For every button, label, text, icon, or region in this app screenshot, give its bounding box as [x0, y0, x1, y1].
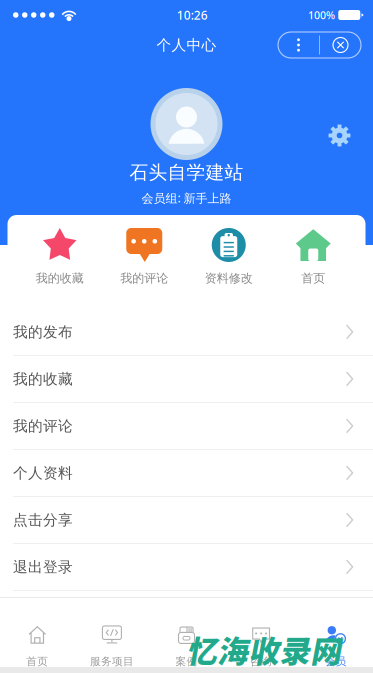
- button[interactable]: 服务项目: [75, 595, 149, 669]
- button[interactable]: 首页: [0, 595, 75, 669]
- staticText: 忆海收录网: [188, 633, 343, 669]
- button[interactable]: Close: [320, 32, 361, 58]
- staticText: 咨询: [250, 655, 272, 668]
- button[interactable]: 我的发布: [0, 309, 373, 356]
- staticText: 我的收藏: [13, 370, 73, 388]
- staticText: 案例: [175, 655, 197, 668]
- button[interactable]: 退出登录: [0, 544, 373, 591]
- staticText: 石头自学建站: [129, 161, 243, 184]
- staticText: 会员: [325, 655, 347, 668]
- staticText: 个人资料: [13, 464, 73, 482]
- staticText: 个人中心: [156, 36, 216, 54]
- button[interactable]: 我的评论: [102, 228, 186, 286]
- staticText: 我的收藏: [36, 271, 84, 286]
- staticText: 点击分享: [13, 511, 73, 529]
- button[interactable]: 我的评论: [0, 403, 373, 450]
- button[interactable]: More: [278, 32, 319, 58]
- staticText: 首页: [301, 271, 325, 286]
- staticText: 会员组: 新手上路: [141, 190, 231, 206]
- button[interactable]: 首页: [271, 228, 355, 286]
- staticText: 我的评论: [13, 417, 73, 435]
- staticText: 我的发布: [13, 323, 73, 341]
- staticText: 首页: [26, 655, 48, 668]
- button[interactable]: 案例: [149, 595, 224, 669]
- staticText: 退出登录: [13, 558, 73, 576]
- button[interactable]: 我的收藏: [0, 356, 373, 403]
- button[interactable]: 点击分享: [0, 497, 373, 544]
- button[interactable]: 个人资料: [0, 450, 373, 497]
- staticText: 10:26: [177, 7, 208, 23]
- button[interactable]: 会员: [298, 595, 373, 669]
- staticText: 我的评论: [120, 271, 168, 286]
- button[interactable]: 资料修改: [186, 228, 271, 286]
- staticText: 资料修改: [205, 271, 253, 286]
- button[interactable]: Settings: [328, 124, 351, 147]
- button[interactable]: 咨询: [224, 595, 298, 669]
- button[interactable]: 我的收藏: [17, 228, 102, 286]
- staticText: 100%: [308, 8, 335, 22]
- staticText: 服务项目: [90, 655, 134, 668]
